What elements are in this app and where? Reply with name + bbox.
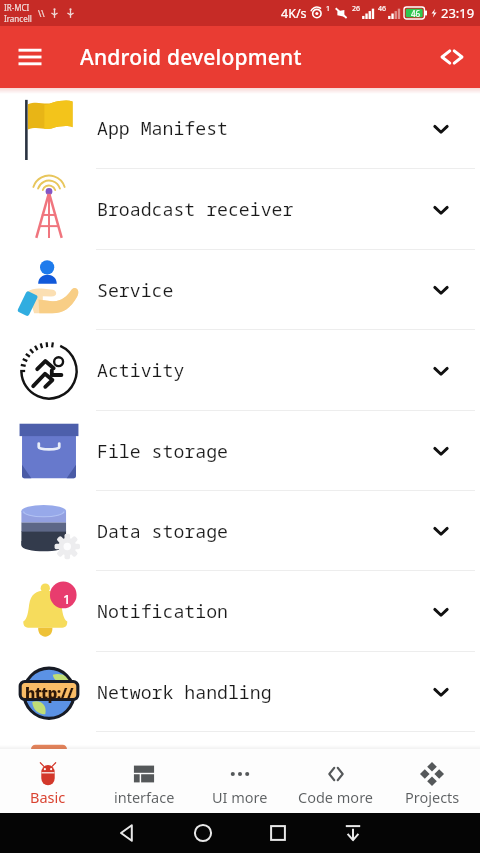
button[interactable]: Code more xyxy=(288,749,384,813)
staticText: Code more xyxy=(298,787,374,807)
staticText: Basic xyxy=(30,787,66,807)
staticText: App Manifest xyxy=(97,116,228,141)
button[interactable]: Hide navigation bar xyxy=(338,818,368,848)
staticText: 1 xyxy=(63,590,71,608)
button[interactable]: Service xyxy=(0,250,480,330)
staticText: Data storage xyxy=(97,519,228,544)
button[interactable]: Broadcast receiver xyxy=(0,169,480,250)
staticText: Projects xyxy=(405,787,460,807)
button[interactable]: File storage xyxy=(0,411,480,491)
button[interactable]: Projects xyxy=(384,749,480,813)
staticText: UI more xyxy=(212,787,268,807)
button[interactable]: Open navigation menu xyxy=(8,35,52,79)
staticText: File storage xyxy=(97,439,228,464)
button[interactable]: interface xyxy=(96,749,192,813)
staticText: 46 xyxy=(411,8,421,19)
button[interactable]: Basic xyxy=(0,749,96,813)
button[interactable]: Home xyxy=(188,818,218,848)
staticText: 4K/s xyxy=(281,5,307,22)
staticText: Notification xyxy=(97,599,228,624)
staticText: Android development xyxy=(80,43,302,72)
staticText: Service xyxy=(97,278,174,303)
button[interactable]: http:// xyxy=(0,652,480,732)
staticText: Threads xyxy=(97,760,174,785)
staticText: \\ xyxy=(38,7,45,19)
staticText: Broadcast receiver xyxy=(97,197,294,222)
staticText: 46 xyxy=(378,4,387,14)
staticText: 26 xyxy=(352,4,361,14)
staticText: http:// xyxy=(25,682,73,703)
staticText: interface xyxy=(114,787,175,807)
button[interactable]: Threads xyxy=(0,732,480,812)
staticText: Activity xyxy=(97,358,185,383)
button[interactable]: Data storage xyxy=(0,491,480,571)
staticText: Irancell xyxy=(4,13,32,24)
button[interactable]: App Manifest xyxy=(0,88,480,169)
button[interactable]: Back xyxy=(112,818,142,848)
button[interactable]: Activity xyxy=(0,330,480,411)
button[interactable]: View code xyxy=(433,38,471,76)
staticText: IR-MCI xyxy=(4,2,30,13)
staticText: 23:19 xyxy=(441,4,475,22)
button[interactable]: UI more xyxy=(192,749,288,813)
button[interactable]: Recent apps xyxy=(263,818,293,848)
button[interactable]: 1 xyxy=(0,571,480,652)
staticText: 1 xyxy=(326,4,331,14)
staticText: Network handling xyxy=(97,680,272,705)
